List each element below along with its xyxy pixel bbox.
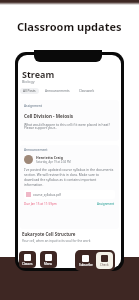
staticText: I've posted the updated course syllabus … [24, 167, 115, 187]
staticText: Eukaryote Cell Structure [22, 231, 76, 237]
staticText: Announcement [24, 148, 48, 152]
button[interactable]: Classwork [76, 88, 98, 94]
button[interactable]: All Posts [20, 88, 39, 94]
button[interactable]: Subscribe [77, 252, 94, 269]
staticText: Stream [22, 68, 55, 80]
button[interactable]: Announcements [42, 88, 73, 94]
staticText: course_syllabus.pdf [33, 193, 61, 197]
button[interactable]: Check [96, 252, 113, 269]
staticText: Due Jan 15 at 11:59pm [24, 202, 57, 206]
staticText: Classroom updates [17, 19, 122, 34]
button[interactable]: course_syllabus.pdf [26, 190, 113, 199]
staticText: Announcements [45, 89, 70, 93]
staticText: Your cell, when an input to its soul for… [22, 239, 91, 243]
button[interactable]: Announcement [20, 145, 119, 229]
staticText: Check [100, 263, 109, 267]
staticText: Assignment [97, 202, 115, 206]
staticText: Subscribe [79, 263, 93, 267]
staticText: Classes [22, 262, 33, 266]
button[interactable]: Assignment [20, 100, 119, 141]
staticText: Menu [44, 262, 53, 266]
staticText: What would happen to this cell if it wer… [24, 122, 115, 130]
staticText: Classwork [79, 89, 95, 93]
staticText: Assignment [24, 104, 43, 108]
button[interactable]: Menu [40, 251, 57, 268]
staticText: Henrietta Craig [36, 155, 63, 160]
staticText: Biology [22, 79, 35, 84]
button[interactable]: Classes [19, 251, 36, 268]
staticText: Saturday, Apr 19 at 2:04 PM [36, 160, 71, 164]
staticText: All Posts [23, 89, 36, 93]
staticText: Cell Division - Meiosis [24, 113, 74, 119]
